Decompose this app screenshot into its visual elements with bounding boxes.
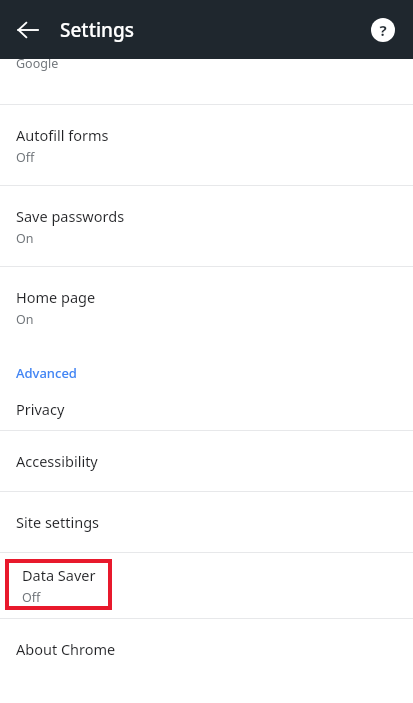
button[interactable]: Privacy bbox=[0, 388, 413, 430]
staticText: Autofill forms bbox=[16, 125, 109, 145]
button[interactable]: Data Saver bbox=[0, 553, 413, 618]
staticText: Google bbox=[16, 59, 59, 72]
button[interactable]: Accessibility bbox=[0, 431, 413, 491]
staticText: On bbox=[16, 230, 34, 247]
staticText: Advanced bbox=[16, 364, 77, 382]
staticText: On bbox=[16, 311, 34, 328]
staticText: Settings bbox=[60, 17, 134, 43]
button[interactable]: Autofill forms bbox=[0, 105, 413, 185]
button[interactable]: Back bbox=[6, 8, 50, 52]
staticText: Off bbox=[16, 149, 35, 166]
button[interactable]: Search engine bbox=[0, 59, 413, 104]
button[interactable]: Home page bbox=[0, 267, 413, 347]
button[interactable]: About Chrome bbox=[0, 619, 413, 679]
button[interactable]: Help bbox=[361, 8, 405, 52]
staticText: Data Saver bbox=[22, 565, 96, 585]
button[interactable]: Save passwords bbox=[0, 186, 413, 266]
staticText: About Chrome bbox=[16, 639, 116, 659]
staticText: Privacy bbox=[16, 399, 65, 419]
staticText: ? bbox=[379, 20, 387, 40]
staticText: Home page bbox=[16, 287, 96, 307]
button[interactable]: Site settings bbox=[0, 492, 413, 552]
staticText: Site settings bbox=[16, 512, 100, 532]
staticText: Off bbox=[22, 589, 41, 606]
staticText: Accessibility bbox=[16, 451, 98, 471]
staticText: Save passwords bbox=[16, 206, 125, 226]
